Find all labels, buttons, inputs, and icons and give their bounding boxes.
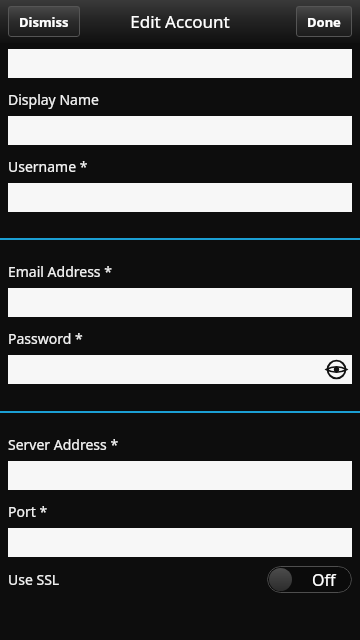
button[interactable]: Use SSL: [0, 557, 360, 601]
staticText: Email Address *: [8, 262, 112, 281]
button[interactable]: Dismiss: [8, 6, 80, 37]
staticText: Use SSL: [8, 570, 60, 589]
staticText: Dismiss: [19, 13, 69, 31]
staticText: Username *: [8, 157, 88, 176]
staticText: Edit Account: [130, 10, 230, 33]
staticText: Done: [307, 13, 341, 31]
button[interactable]: Show password: [8, 355, 352, 384]
button[interactable]: Show password: [327, 360, 346, 379]
button[interactable]: Done: [296, 6, 352, 37]
staticText: Display Name: [8, 90, 99, 109]
staticText: Off: [312, 569, 336, 591]
staticText: Server Address *: [8, 435, 119, 454]
staticText: Password *: [8, 329, 83, 348]
button[interactable]: Use SSL off: [267, 566, 352, 593]
staticText: Port *: [8, 502, 48, 521]
